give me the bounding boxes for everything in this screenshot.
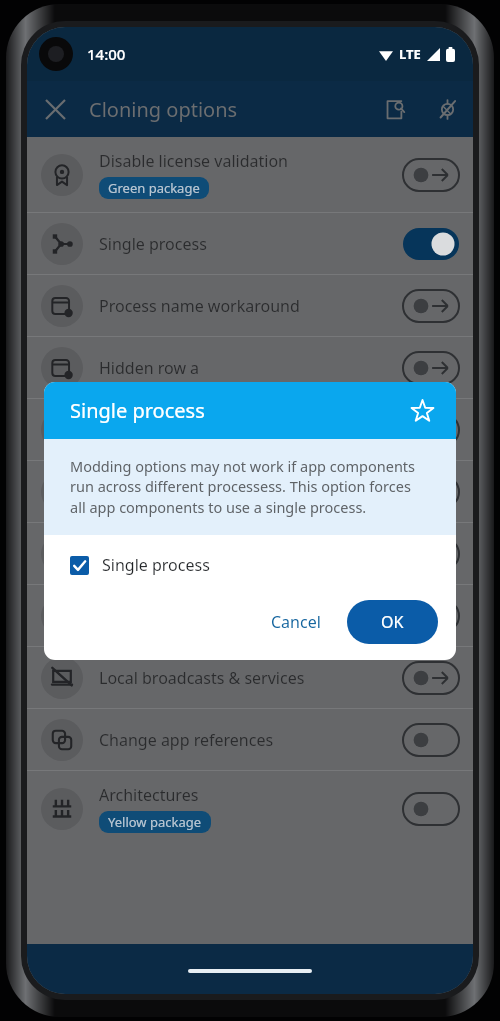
button[interactable]: Toggle	[403, 159, 459, 191]
staticText: Process name workaround	[99, 295, 300, 317]
button[interactable]: Favorite	[404, 393, 440, 429]
button[interactable]: Toggle	[403, 290, 459, 322]
button[interactable]: Change app references	[27, 709, 473, 770]
button[interactable]: Local broadcasts & services	[27, 647, 473, 708]
button[interactable]: Toggle	[403, 476, 459, 508]
staticText: Single process	[99, 233, 207, 255]
button[interactable]: Close	[27, 81, 83, 137]
button[interactable]: Cancel	[257, 602, 335, 642]
staticText: Cloning options	[89, 96, 369, 123]
staticText: Disable license validation	[99, 150, 288, 172]
button[interactable]: Toggle	[403, 724, 459, 756]
staticText: Modding options may not work if app comp…	[70, 456, 430, 518]
staticText: Local broadcasts & services	[99, 667, 305, 689]
staticText: Single process	[102, 554, 210, 576]
button[interactable]: Toggle	[403, 414, 459, 446]
staticText: LTE	[399, 45, 421, 63]
staticText: 14:00	[87, 44, 126, 64]
staticText: Green package	[108, 179, 200, 197]
button[interactable]: Hidden row d	[27, 523, 473, 584]
staticText: Hidden row a	[99, 357, 200, 379]
button[interactable]: Hidden row c	[27, 461, 473, 522]
button[interactable]: Toggle	[403, 538, 459, 570]
staticText: Hidden row d	[99, 543, 200, 565]
button[interactable]: Single process	[44, 535, 456, 584]
staticText: Yellow package	[108, 813, 202, 831]
button[interactable]: OK	[347, 600, 438, 644]
button[interactable]: Search in file	[369, 83, 421, 135]
button[interactable]: Single process	[27, 213, 473, 274]
staticText: Cancel	[271, 611, 321, 633]
staticText: Hidden row b	[99, 419, 200, 441]
button[interactable]: Disable license validation	[27, 137, 473, 212]
button[interactable]: Toggle	[403, 793, 459, 825]
staticText: Hidden row c	[99, 481, 198, 503]
button[interactable]: Toggle	[403, 352, 459, 384]
staticText: Architectures	[99, 784, 199, 806]
button[interactable]: Hidden row b	[27, 399, 473, 460]
button[interactable]: Local activities	[27, 585, 473, 646]
staticText: Single process	[70, 397, 404, 424]
button[interactable]: Process name workaround	[27, 275, 473, 336]
button[interactable]: Hidden row a	[27, 337, 473, 398]
button[interactable]: Architectures	[27, 771, 473, 846]
button[interactable]: Toggle	[403, 662, 459, 694]
staticText: OK	[381, 611, 404, 633]
button[interactable]: Disconnect	[421, 83, 473, 135]
button[interactable]: Toggle	[403, 228, 459, 260]
staticText: Change app references	[99, 729, 274, 751]
button[interactable]: Toggle	[403, 600, 459, 632]
